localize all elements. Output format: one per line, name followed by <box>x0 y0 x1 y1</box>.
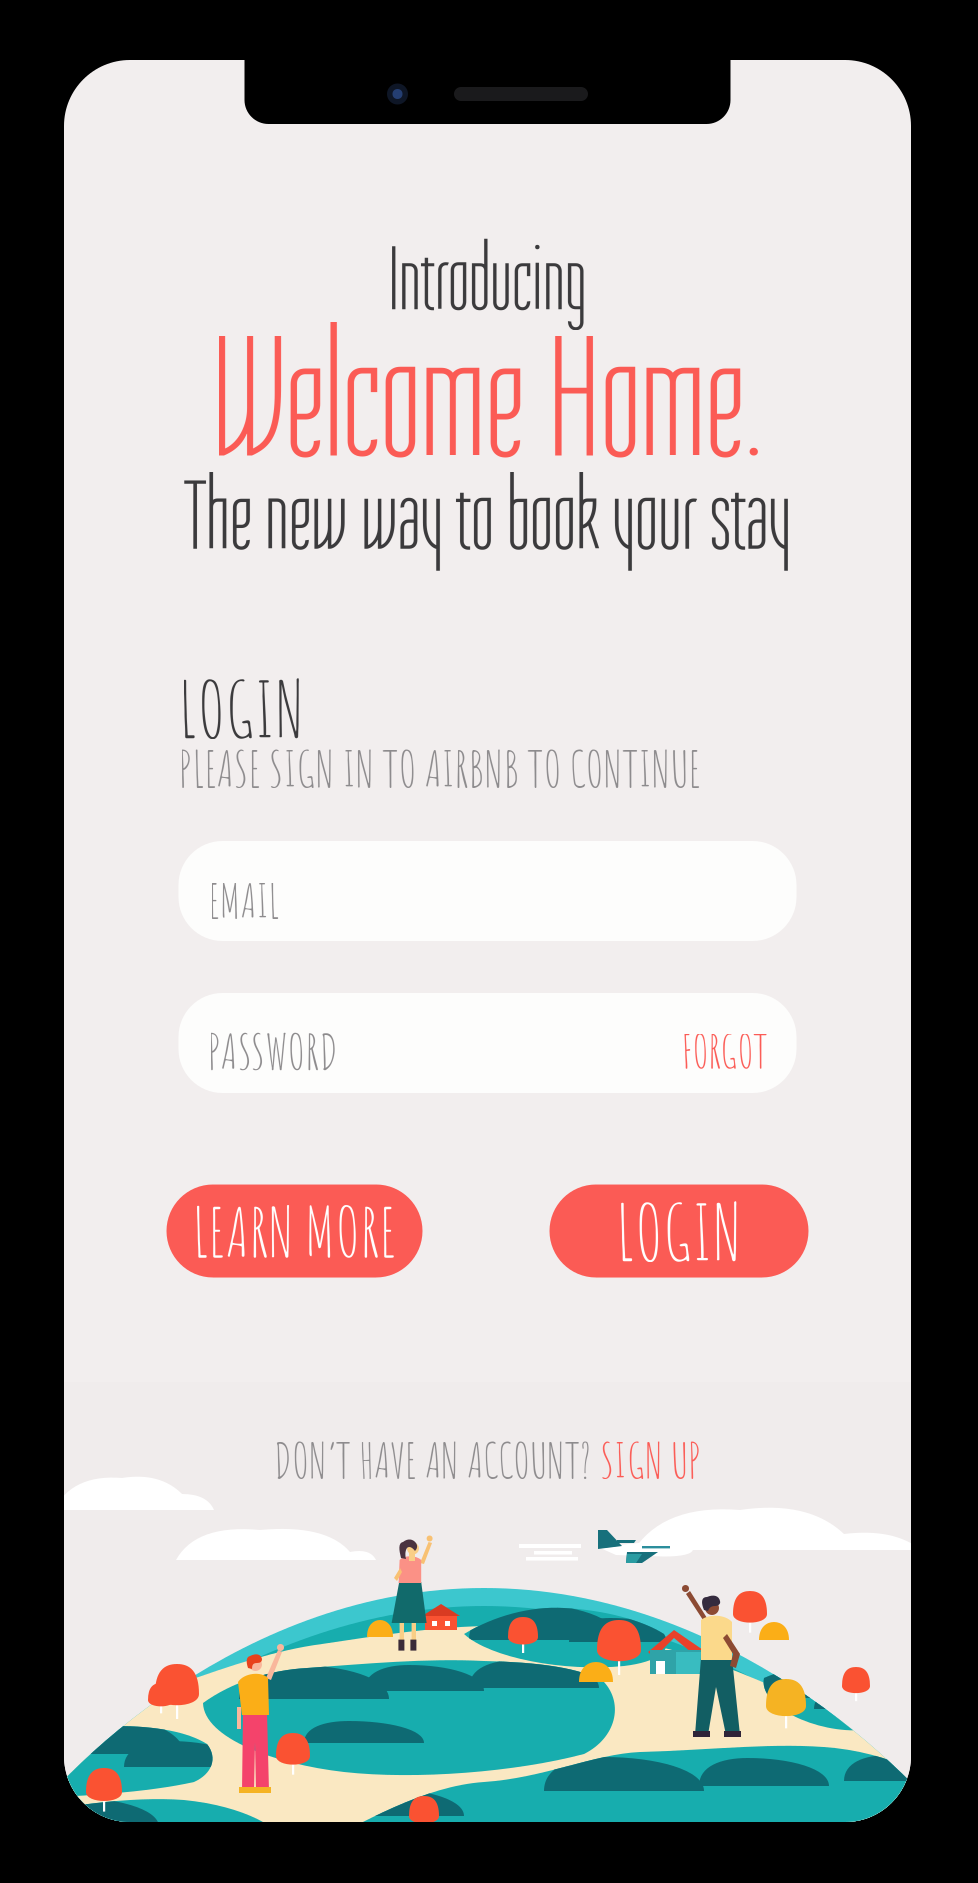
staticText: PLEASE SIGN IN TO AIRBNB TO CONTINUE <box>178 737 700 799</box>
staticText: Welcome Home. <box>211 305 763 495</box>
staticText: LOGIN <box>178 660 304 756</box>
staticText: The new way to book your stay <box>184 462 791 571</box>
staticText: LOGIN <box>616 1183 742 1279</box>
staticText: DON’T HAVE AN ACCOUNT? <box>274 1431 591 1489</box>
staticText: FORGOT <box>681 1023 767 1078</box>
button[interactable]: PASSWORD <box>178 993 796 1093</box>
staticText: EMAIL <box>208 872 279 929</box>
staticText: SIGN UP <box>600 1431 701 1489</box>
button[interactable]: LEARN MORE <box>166 1184 422 1277</box>
button[interactable]: LOGIN <box>549 1184 808 1277</box>
button[interactable]: EMAIL <box>178 841 796 941</box>
button[interactable]: SIGN UP <box>600 1431 701 1489</box>
staticText: LEARN MORE <box>192 1189 396 1273</box>
staticText: PASSWORD <box>207 1020 337 1081</box>
staticText: Introducing <box>388 230 587 330</box>
